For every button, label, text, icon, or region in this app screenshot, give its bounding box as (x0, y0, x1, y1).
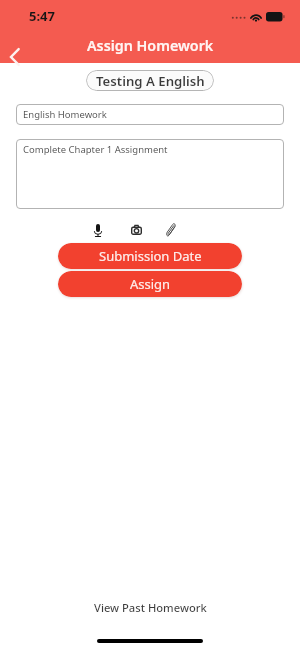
staticText: View Past Homework (94, 600, 207, 615)
staticText: English Homework (23, 108, 107, 121)
staticText: Submission Date (99, 247, 202, 265)
staticText: Assign (130, 275, 171, 293)
staticText: 5:47 (29, 7, 55, 25)
button[interactable]: Complete Chapter 1 Assignment (16, 139, 284, 209)
button[interactable]: Submission Date (58, 243, 242, 269)
button[interactable]: Back (0, 45, 28, 69)
button[interactable]: Attach file (159, 220, 183, 240)
button[interactable]: View Past Homework (94, 596, 207, 618)
staticText: Assign Homework (87, 36, 214, 55)
button[interactable]: Testing A English (86, 70, 214, 91)
button[interactable]: Assign (58, 271, 242, 297)
button[interactable]: Record audio (86, 220, 110, 240)
staticText: Testing A English (96, 72, 205, 90)
staticText: Complete Chapter 1 Assignment (23, 143, 168, 156)
button[interactable]: Take photo (124, 220, 148, 240)
button[interactable]: English Homework (16, 104, 284, 125)
